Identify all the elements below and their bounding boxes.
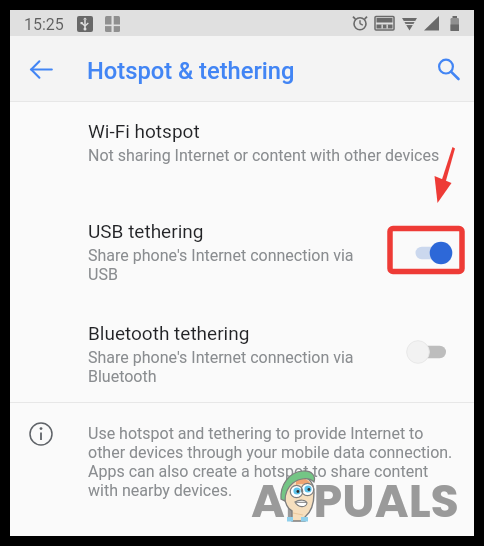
staticText: Not sharing Internet or content with oth… (88, 146, 440, 165)
button[interactable]: Bluetooth tethering (10, 309, 474, 409)
staticText: Wi-Fi hotspot (88, 120, 200, 142)
staticText: Bluetooth (88, 367, 157, 386)
button[interactable]: USB tethering (10, 207, 474, 307)
staticText: Bluetooth tethering (88, 322, 250, 344)
button[interactable]: Turn on (406, 333, 470, 371)
staticText: 15:25 (24, 15, 64, 34)
staticText: APPUALS (251, 469, 459, 533)
staticText: with nearby devices. (88, 481, 233, 500)
button[interactable]: Navigate up (22, 50, 60, 88)
staticText: Use hotspot and tethering to provide Int… (88, 424, 424, 443)
staticText: Share phone's Internet connection via (88, 246, 354, 265)
button[interactable]: Wi-Fi hotspot (10, 107, 474, 187)
staticText: Hotspot & tethering (87, 57, 295, 85)
button[interactable]: Turn off (406, 234, 470, 272)
staticText: Apps can also create a hotspot to share … (88, 462, 429, 481)
staticText: Share phone's Internet connection via (88, 348, 354, 367)
staticText: USB tethering (88, 220, 204, 242)
button[interactable]: Search (430, 50, 468, 88)
staticText: USB (88, 265, 118, 284)
staticText: other devices through your mobile data c… (88, 443, 453, 462)
